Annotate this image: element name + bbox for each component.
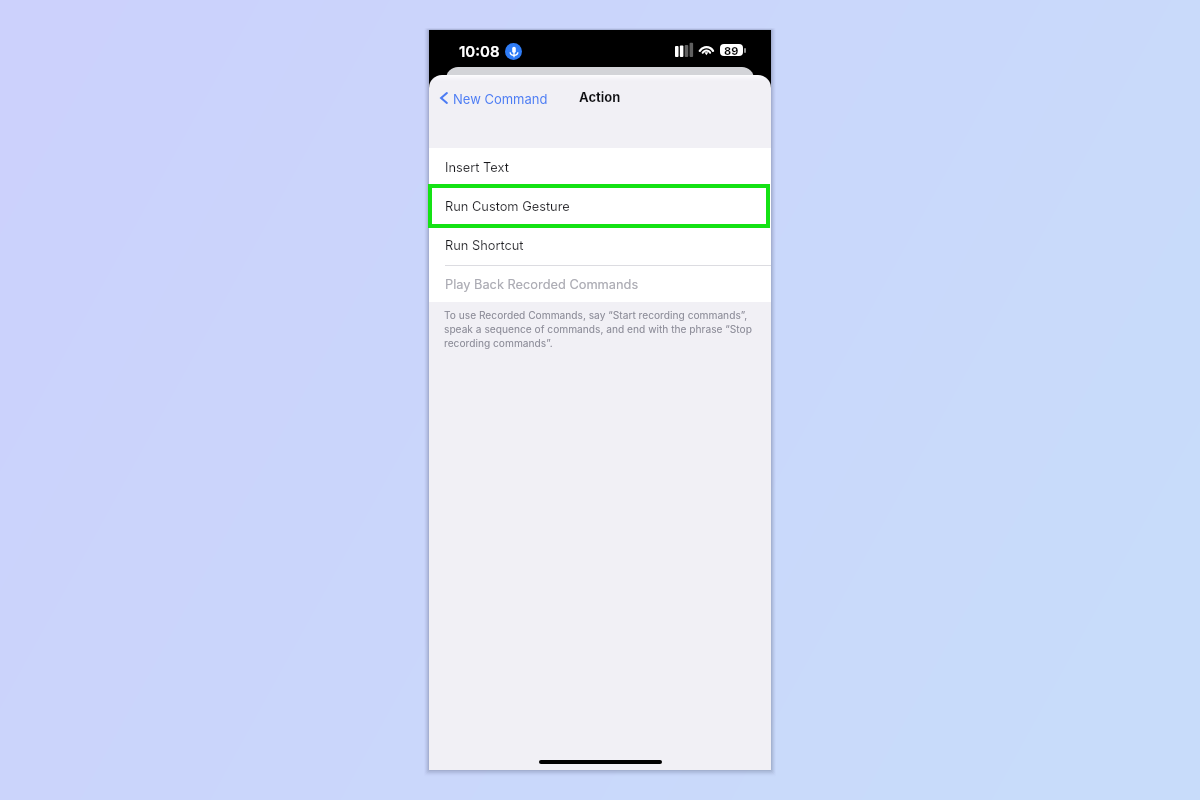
button[interactable]: Insert Text bbox=[429, 148, 771, 187]
staticText: Play Back Recorded Commands bbox=[445, 277, 639, 292]
staticText: Run Shortcut bbox=[445, 238, 524, 253]
other: Wi-Fi connected bbox=[697, 41, 717, 57]
staticText: Insert Text bbox=[445, 160, 509, 175]
button[interactable]: Play Back Recorded Commands bbox=[429, 266, 771, 302]
button[interactable]: New Command bbox=[439, 88, 552, 110]
staticText: 10:08 bbox=[459, 42, 500, 60]
other: Cellular signal strength bbox=[675, 42, 694, 57]
staticText: To use Recorded Commands, say “Start rec… bbox=[444, 309, 758, 350]
staticText: 89 bbox=[724, 44, 739, 56]
button[interactable]: Run Custom Gesture bbox=[429, 187, 771, 226]
other: Voice Control active bbox=[505, 43, 522, 60]
button[interactable]: Run Shortcut bbox=[429, 226, 771, 265]
staticText: New Command bbox=[453, 91, 548, 107]
staticText: Action bbox=[579, 89, 621, 105]
staticText: Run Custom Gesture bbox=[445, 199, 570, 214]
